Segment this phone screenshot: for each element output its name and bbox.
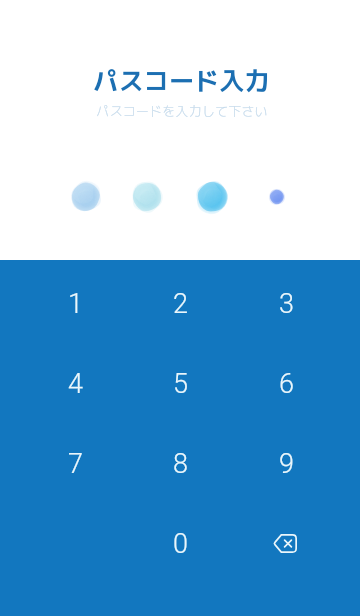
button[interactable]: 2 [128, 266, 232, 342]
staticText: 7 [68, 448, 83, 480]
button[interactable]: 9 [234, 426, 338, 502]
button[interactable]: 0 [128, 506, 232, 582]
button[interactable]: 3 [234, 266, 338, 342]
staticText: パスコード入力 [93, 63, 270, 98]
staticText: 4 [68, 368, 83, 400]
button[interactable]: 1 [23, 266, 127, 342]
button[interactable]: Delete [234, 506, 338, 582]
button[interactable]: 8 [128, 426, 232, 502]
staticText: 1 [68, 288, 83, 320]
staticText: 8 [173, 448, 188, 480]
staticText: 0 [173, 528, 188, 560]
staticText: パスコードを入力して下さい [96, 102, 268, 120]
staticText: 2 [173, 288, 188, 320]
button[interactable]: 6 [234, 346, 338, 422]
staticText: 6 [279, 368, 294, 400]
button[interactable]: 5 [128, 346, 232, 422]
staticText: 3 [279, 288, 294, 320]
staticText: 9 [279, 448, 294, 480]
staticText: 5 [173, 368, 188, 400]
button[interactable]: 7 [23, 426, 127, 502]
button[interactable]: 4 [23, 346, 127, 422]
